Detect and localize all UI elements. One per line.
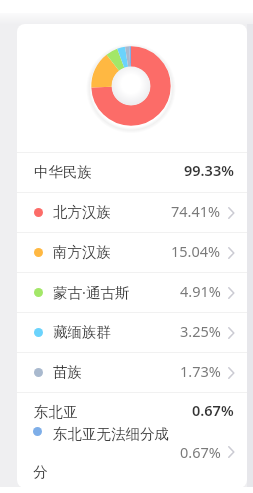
staticText: 南方汉族 bbox=[53, 243, 111, 261]
staticText: 74.41% bbox=[171, 201, 221, 221]
staticText: 蒙古·通古斯 bbox=[53, 282, 130, 302]
staticText: 分 bbox=[33, 463, 48, 481]
button[interactable]: 蒙古·通古斯 bbox=[17, 273, 247, 312]
other: Show details bbox=[228, 247, 235, 259]
button[interactable]: 东北亚无法细分成 bbox=[17, 420, 247, 488]
staticText: 4.91% bbox=[180, 281, 221, 301]
button[interactable]: 南方汉族 bbox=[17, 233, 247, 272]
staticText: 15.04% bbox=[171, 241, 221, 261]
button[interactable]: 东北亚 bbox=[17, 393, 247, 432]
button[interactable]: 北方汉族 bbox=[17, 193, 247, 232]
button[interactable]: 苗族 bbox=[17, 353, 247, 392]
other: Show details bbox=[228, 446, 235, 458]
staticText: 99.33% bbox=[184, 160, 234, 180]
button[interactable]: 藏缅族群 bbox=[17, 313, 247, 352]
staticText: 苗族 bbox=[53, 363, 82, 381]
button[interactable]: 中华民族 bbox=[17, 153, 247, 192]
staticText: 0.67% bbox=[192, 400, 234, 420]
staticText: 3.25% bbox=[180, 321, 221, 341]
other: Show details bbox=[228, 207, 235, 219]
staticText: 0.67% bbox=[180, 442, 221, 462]
staticText: 1.73% bbox=[180, 361, 221, 381]
staticText: 东北亚无法细分成 bbox=[53, 425, 169, 443]
staticText: 东北亚 bbox=[34, 403, 78, 421]
staticText: 中华民族 bbox=[34, 163, 92, 181]
staticText: 北方汉族 bbox=[53, 203, 111, 221]
other: Show details bbox=[228, 287, 235, 299]
staticText: 藏缅族群 bbox=[53, 323, 111, 341]
other: Show details bbox=[228, 367, 235, 379]
other: Show details bbox=[228, 327, 235, 339]
